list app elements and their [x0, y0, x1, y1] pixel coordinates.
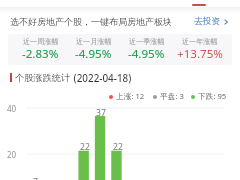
staticText: 22	[80, 141, 90, 153]
staticText: 平盘: 3	[160, 91, 184, 102]
staticText: +13.75%	[177, 46, 223, 62]
staticText: 40	[7, 103, 17, 114]
staticText: 下跌: 95	[198, 91, 227, 102]
staticText: 选不好房地产个股，一键布局房地产板块	[10, 16, 172, 27]
staticText: 近一月涨幅	[76, 37, 112, 46]
staticText: 22	[113, 141, 123, 153]
staticText: 近一季涨幅	[129, 37, 165, 46]
staticText: 37	[96, 107, 106, 119]
staticText: 20	[7, 149, 17, 160]
staticText: 上涨: 12	[116, 91, 145, 102]
staticText: 近一周涨幅	[23, 37, 59, 46]
staticText: -4.95%	[128, 46, 165, 62]
staticText: 7	[33, 176, 38, 180]
staticText: 去投资	[194, 16, 221, 27]
staticText: -2.83%	[22, 46, 59, 62]
staticText: 个股涨跌统计	[15, 72, 71, 84]
staticText: 近一年涨幅	[182, 37, 218, 46]
staticText: -4.95%	[75, 46, 112, 62]
button[interactable]: 选不好房地产个股，一键布局房地产板块	[0, 12, 240, 31]
staticText: (2022-04-18)	[71, 71, 132, 84]
